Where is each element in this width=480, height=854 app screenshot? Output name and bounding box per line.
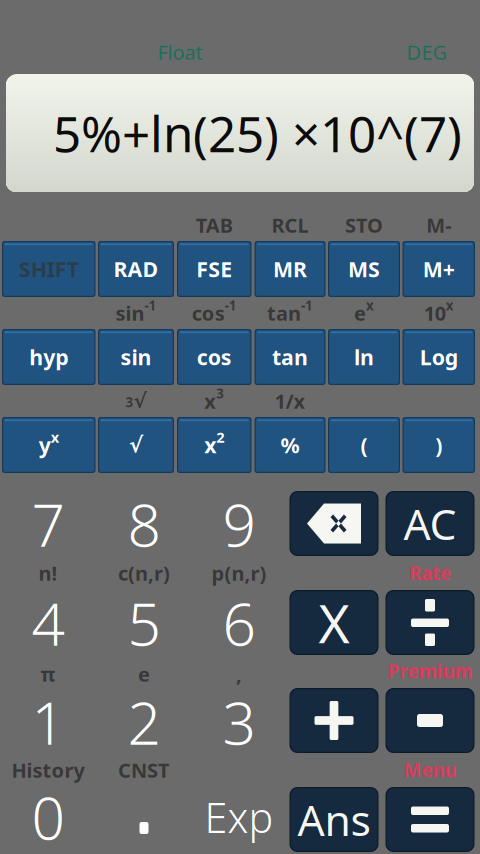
staticText: 1/x bbox=[274, 388, 305, 414]
staticText: TAB bbox=[196, 212, 233, 238]
staticText: 5 bbox=[127, 584, 160, 662]
staticText: RCL bbox=[271, 212, 308, 238]
button[interactable]: 0 bbox=[0, 774, 95, 854]
staticText: -1 bbox=[144, 296, 156, 314]
button[interactable]: Decimal point bbox=[96, 774, 191, 854]
button[interactable]: 7 bbox=[0, 481, 95, 567]
staticText: Premium bbox=[387, 659, 472, 683]
staticText: √ bbox=[129, 433, 143, 457]
staticText: cos bbox=[197, 343, 232, 371]
staticText: n! bbox=[38, 560, 57, 586]
staticText: tan bbox=[267, 300, 301, 326]
button[interactable]: Exp bbox=[191, 774, 286, 854]
staticText: ln bbox=[354, 343, 374, 371]
staticText: tan bbox=[272, 343, 308, 371]
staticText: RAD bbox=[113, 255, 158, 283]
staticText: CNST bbox=[118, 757, 170, 783]
button[interactable]: 3 bbox=[191, 679, 286, 765]
staticText: SHIFT bbox=[19, 255, 79, 283]
staticText: e bbox=[354, 300, 366, 326]
button[interactable]: 6 bbox=[191, 580, 286, 666]
staticText: DEG bbox=[406, 39, 447, 65]
staticText: ) bbox=[435, 431, 442, 459]
staticText: 2 bbox=[127, 683, 160, 761]
button[interactable]: Backspace bbox=[289, 491, 378, 556]
staticText: History bbox=[11, 757, 84, 783]
button[interactable]: RAD bbox=[98, 241, 174, 297]
button[interactable]: FSE bbox=[177, 241, 251, 297]
staticText: Rate bbox=[409, 561, 451, 585]
button[interactable]: MS bbox=[328, 241, 400, 297]
button[interactable]: SHIFT bbox=[2, 241, 95, 297]
staticText: π bbox=[40, 661, 55, 687]
staticText: STO bbox=[345, 212, 383, 238]
staticText: x bbox=[446, 296, 454, 314]
button[interactable]: 2 bbox=[96, 679, 191, 765]
button[interactable]: Answer bbox=[289, 787, 378, 852]
button[interactable]: x bbox=[177, 417, 251, 473]
staticText: , bbox=[236, 661, 242, 687]
staticText: -1 bbox=[301, 296, 313, 314]
button[interactable]: M+ bbox=[402, 241, 475, 297]
staticText: c(n,r) bbox=[118, 560, 170, 586]
button[interactable]: tan bbox=[254, 329, 325, 385]
staticText: hyp bbox=[29, 343, 68, 371]
button[interactable]: Divide bbox=[385, 590, 474, 655]
button[interactable]: Log bbox=[402, 329, 475, 385]
button[interactable]: 9 bbox=[191, 481, 286, 567]
staticText: Menu bbox=[403, 758, 456, 782]
staticText: 3 bbox=[125, 393, 133, 411]
button[interactable]: 1 bbox=[0, 679, 95, 765]
staticText: ( bbox=[360, 431, 367, 459]
button[interactable]: ln bbox=[328, 329, 400, 385]
staticText: Ans bbox=[297, 791, 370, 848]
staticText: x bbox=[366, 296, 374, 314]
staticText: 0 bbox=[31, 778, 64, 854]
staticText: 7 bbox=[31, 485, 64, 563]
button[interactable]: MR bbox=[254, 241, 325, 297]
staticText: e bbox=[138, 661, 150, 687]
staticText: -1 bbox=[225, 296, 237, 314]
staticText: 4 bbox=[31, 584, 64, 662]
button[interactable]: Plus bbox=[289, 688, 378, 753]
staticText: x bbox=[204, 388, 216, 414]
staticText: 8 bbox=[127, 485, 160, 563]
button[interactable]: Float bbox=[135, 39, 225, 65]
staticText: M+ bbox=[423, 255, 455, 283]
button[interactable]: Equals bbox=[385, 787, 474, 852]
button[interactable]: sin bbox=[98, 329, 174, 385]
staticText: 10 bbox=[424, 300, 446, 326]
staticText: Float bbox=[157, 39, 202, 65]
button[interactable]: y bbox=[2, 417, 95, 473]
button[interactable]: Multiply bbox=[289, 590, 378, 655]
staticText: MR bbox=[273, 255, 307, 283]
button[interactable]: All clear bbox=[385, 491, 474, 556]
button[interactable]: ( bbox=[328, 417, 400, 473]
staticText: % bbox=[280, 431, 299, 459]
button[interactable]: cos bbox=[177, 329, 251, 385]
button[interactable]: Minus bbox=[385, 688, 474, 753]
button[interactable]: DEG bbox=[387, 39, 467, 65]
staticText: x bbox=[204, 431, 216, 459]
staticText: Exp bbox=[204, 790, 273, 844]
staticText: 3 bbox=[216, 384, 224, 402]
button[interactable]: √ bbox=[98, 417, 174, 473]
staticText: x bbox=[51, 427, 59, 447]
staticText: AC bbox=[403, 495, 456, 552]
button[interactable]: 4 bbox=[0, 580, 95, 666]
staticText: 3 bbox=[222, 683, 255, 761]
staticText: X bbox=[318, 587, 349, 658]
button[interactable]: 5 bbox=[96, 580, 191, 666]
button[interactable]: 8 bbox=[96, 481, 191, 567]
staticText: Log bbox=[420, 343, 458, 371]
button[interactable]: hyp bbox=[2, 329, 95, 385]
staticText: p(n,r) bbox=[211, 560, 266, 586]
button[interactable]: ) bbox=[402, 417, 475, 473]
staticText: √ bbox=[133, 390, 146, 412]
staticText: MS bbox=[348, 255, 380, 283]
staticText: y bbox=[39, 431, 51, 459]
button[interactable]: % bbox=[254, 417, 325, 473]
staticText: 5%+ln(25) ×10^(7) bbox=[53, 100, 462, 166]
staticText: sin bbox=[120, 343, 151, 371]
staticText: 2 bbox=[216, 427, 224, 447]
